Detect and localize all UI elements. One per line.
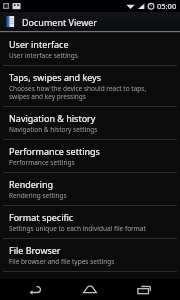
staticText: Taps, swipes and keys (9, 71, 101, 83)
button[interactable]: Home (72, 279, 108, 300)
staticText: Performance settings (9, 158, 75, 167)
staticText: Document Viewer (22, 16, 98, 28)
staticText: 05:00 (157, 1, 177, 11)
staticText: User interface (9, 38, 69, 50)
other: App icon (4, 15, 17, 28)
staticText: File Browser (9, 244, 61, 256)
button[interactable]: User interface (0, 33, 180, 65)
staticText: Performance settings (9, 145, 100, 157)
button[interactable]: Performance settings (0, 140, 180, 172)
button[interactable]: App icon (0, 12, 180, 31)
staticText: Navigation & history (9, 112, 96, 124)
button[interactable]: Navigation & history (0, 107, 180, 139)
button[interactable]: Format specific (0, 206, 180, 238)
staticText: User interface settings (9, 51, 78, 60)
staticText: Rendering (9, 178, 53, 190)
staticText: Format specific (9, 211, 74, 223)
staticText: Settings unique to each individual file … (9, 224, 146, 233)
button[interactable]: Rendering (0, 173, 180, 205)
button[interactable]: Taps, swipes and keys (0, 66, 180, 106)
staticText: Chooses how the device should react to t… (9, 84, 147, 101)
staticText: Navigation & history settings (9, 125, 98, 134)
button[interactable]: File Browser (0, 239, 180, 271)
staticText: File browser and file types settings (9, 257, 115, 266)
staticText: Rendering settings (9, 191, 67, 200)
button[interactable]: Recents (126, 279, 162, 300)
button[interactable]: Back (18, 279, 54, 300)
